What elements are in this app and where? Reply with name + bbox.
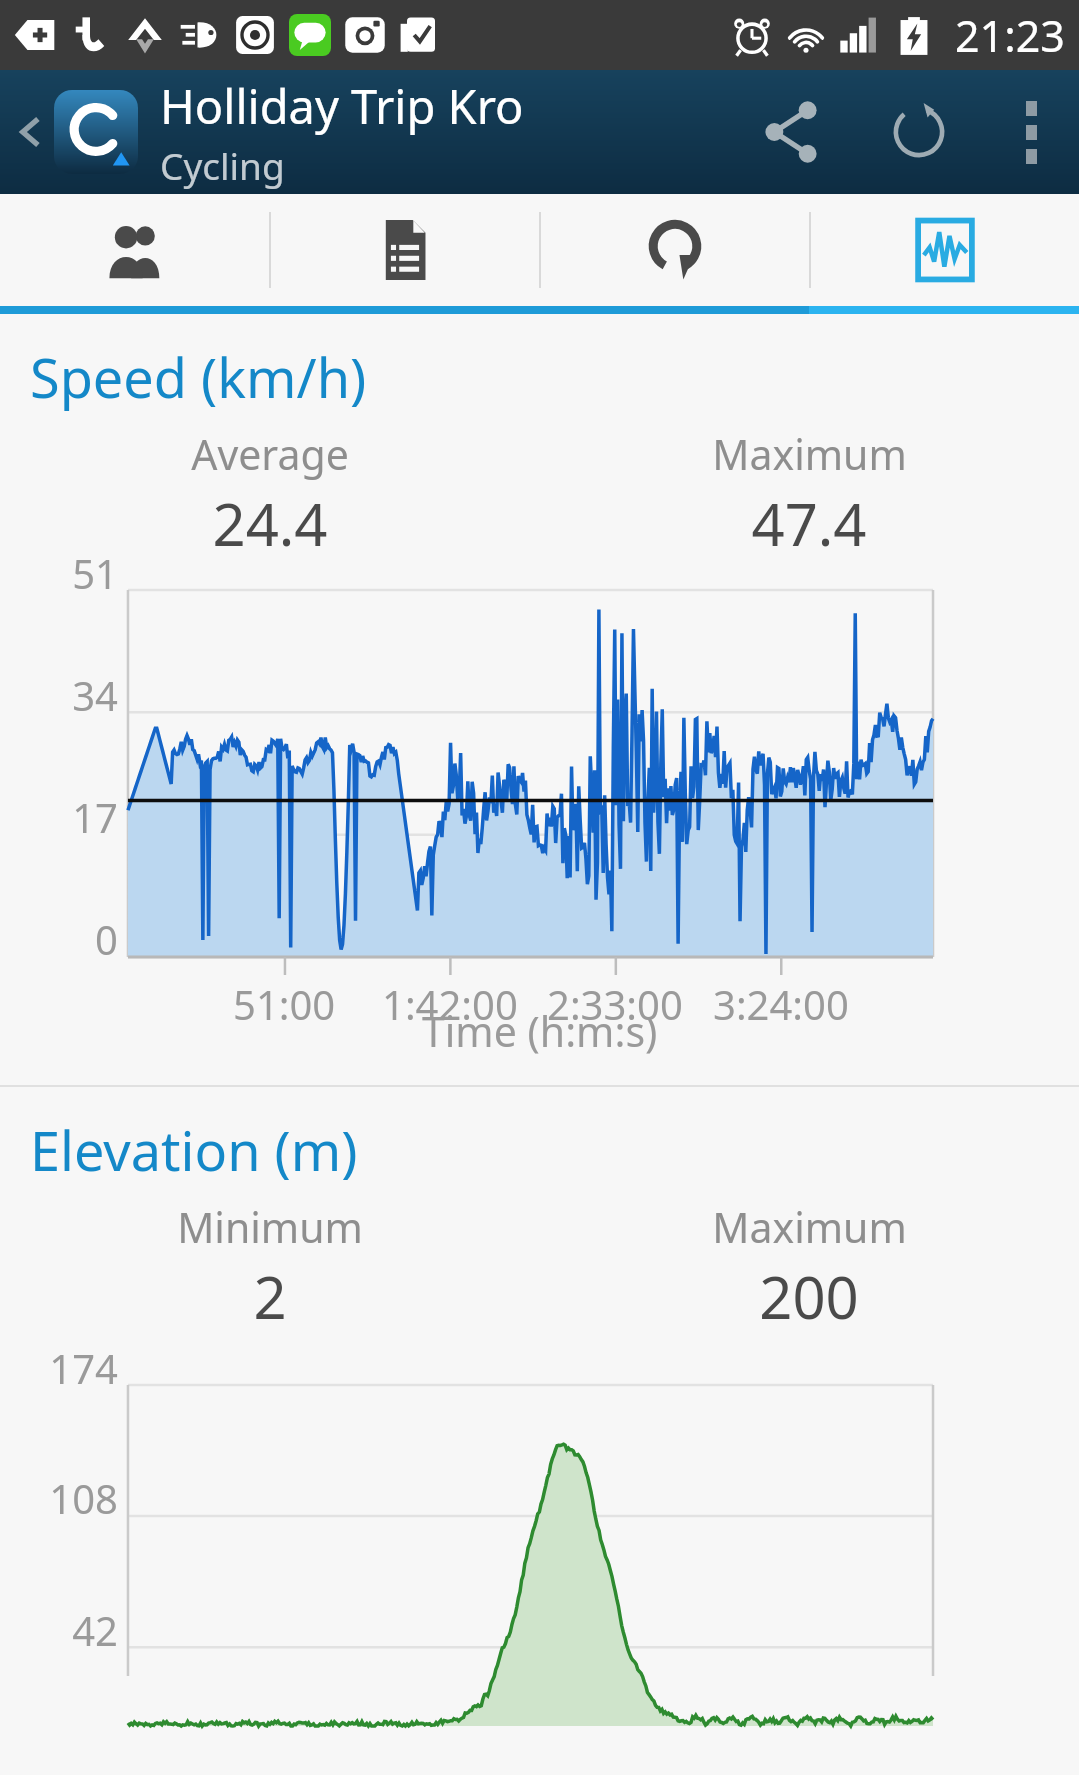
staticText: Minimum: [177, 1199, 363, 1255]
staticText: 51: [72, 546, 118, 600]
staticText: Average: [191, 426, 349, 482]
staticText: 17: [72, 790, 118, 844]
staticText: 0: [95, 912, 118, 966]
staticText: Maximum: [712, 1199, 907, 1255]
staticText: 51:00: [233, 977, 336, 1031]
staticText: Cycling: [160, 140, 285, 190]
staticText: Speed (km/h): [30, 340, 367, 414]
button[interactable]: Graphs: [811, 194, 1079, 306]
staticText: 2: [253, 1257, 287, 1336]
staticText: Holliday Trip Kro: [160, 74, 524, 138]
button[interactable]: Share: [727, 70, 855, 194]
staticText: 47.4: [751, 484, 867, 563]
button[interactable]: Back: [0, 90, 142, 174]
button[interactable]: Laps: [541, 194, 809, 306]
staticText: Maximum: [712, 426, 907, 482]
staticText: 3:24:00: [713, 977, 849, 1031]
staticText: 34: [72, 668, 118, 722]
staticText: Time (h:m:s): [422, 1003, 658, 1059]
staticText: 200: [759, 1257, 859, 1336]
staticText: 24.4: [212, 484, 328, 563]
staticText: 21:23: [955, 6, 1065, 65]
button[interactable]: Friends: [0, 194, 269, 306]
button[interactable]: Details: [271, 194, 539, 306]
button[interactable]: More options: [983, 70, 1079, 194]
staticText: 42: [72, 1603, 118, 1657]
staticText: 174: [49, 1341, 118, 1395]
button[interactable]: Refresh: [855, 70, 983, 194]
staticText: 108: [49, 1471, 118, 1525]
staticText: 2:33:00: [547, 977, 683, 1031]
staticText: Elevation (m): [30, 1113, 358, 1187]
staticText: 1:42:00: [382, 977, 518, 1031]
